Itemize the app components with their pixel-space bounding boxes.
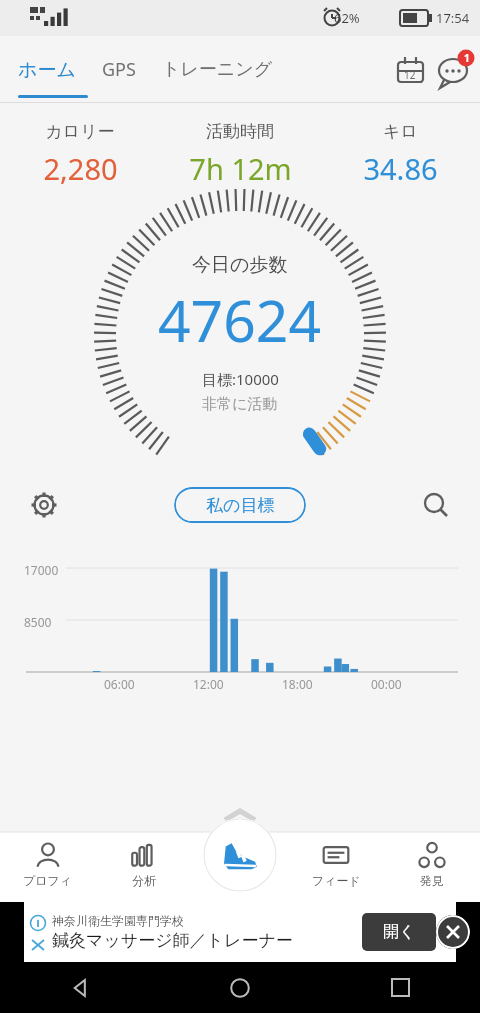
button[interactable]: 発見	[384, 826, 480, 902]
staticText: 7h 12m	[189, 149, 292, 188]
button[interactable]: ホーム	[18, 58, 76, 82]
button[interactable]: 開く	[362, 913, 436, 951]
staticText: GPS	[102, 57, 136, 82]
staticText: 私の目標	[206, 495, 275, 516]
staticText: 12:00	[193, 676, 224, 692]
staticText: 活動時間	[206, 121, 274, 142]
button[interactable]: カロリー	[0, 121, 160, 188]
staticText: 目標:10000	[202, 369, 279, 389]
staticText: 鍼灸マッサージ師／トレーナー	[52, 930, 293, 951]
button[interactable]: Messages	[432, 46, 474, 94]
staticText: 1	[464, 51, 470, 65]
staticText: 神奈川衛生学園専門学校	[52, 913, 184, 928]
button[interactable]: Search	[414, 483, 458, 527]
button[interactable]: Back	[0, 962, 160, 1013]
button[interactable]: フィード	[288, 826, 384, 902]
staticText: 開く	[383, 922, 416, 942]
button[interactable]: Close ad	[436, 915, 470, 949]
button[interactable]: Expand	[0, 804, 480, 826]
staticText: 18:00	[282, 676, 313, 692]
staticText: 分析	[132, 873, 156, 888]
staticText: カロリー	[45, 121, 115, 142]
staticText: 非常に活動	[202, 395, 278, 414]
staticText: 17:54	[436, 9, 470, 27]
button[interactable]: Calendar	[388, 48, 432, 92]
button[interactable]: Home	[160, 962, 320, 1013]
button[interactable]: 私の目標	[174, 487, 306, 523]
button[interactable]: 分析	[96, 826, 192, 902]
button[interactable]: キロ	[320, 121, 480, 188]
staticText: トレーニング	[162, 58, 273, 81]
staticText: ホーム	[18, 58, 76, 82]
staticText: 62%	[334, 9, 360, 27]
button[interactable]: GPS	[102, 57, 136, 82]
button[interactable]: プロフィ	[0, 826, 96, 902]
button[interactable]: Recents	[320, 962, 480, 1013]
staticText: 8500	[24, 614, 52, 630]
button[interactable]: 神奈川衛生学園専門学校	[24, 902, 456, 962]
staticText: プロフィ	[23, 873, 73, 888]
staticText: 34.86	[363, 149, 438, 188]
button[interactable]: Steps	[203, 818, 277, 892]
button[interactable]: 今日の歩数	[158, 253, 322, 414]
staticText: 06:00	[104, 676, 135, 692]
staticText: 今日の歩数	[192, 253, 288, 277]
staticText: キロ	[383, 121, 418, 142]
staticText: 00:00	[371, 676, 402, 692]
staticText: フィード	[312, 873, 361, 888]
button[interactable]: 活動時間	[160, 121, 320, 188]
staticText: 17000	[24, 562, 59, 578]
staticText: 発見	[420, 873, 444, 888]
staticText: 12	[404, 68, 416, 82]
button[interactable]: Settings	[22, 483, 66, 527]
staticText: 47624	[158, 281, 322, 359]
staticText: 2,280	[43, 149, 118, 188]
button[interactable]: トレーニング	[162, 58, 273, 81]
